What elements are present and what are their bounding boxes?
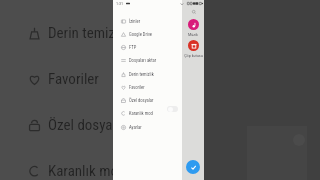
button[interactable]: Search xyxy=(190,8,197,15)
button[interactable]: Dosyaları aktar xyxy=(113,54,182,66)
staticText: Derin temizlik xyxy=(48,24,129,42)
button[interactable]: Ayarlar xyxy=(113,121,182,133)
button[interactable]: Karanlık mod xyxy=(113,107,182,119)
button[interactable]: Özel dosyalar xyxy=(113,94,182,106)
button[interactable]: İzinler xyxy=(113,15,182,27)
staticText: Google Drive xyxy=(129,32,153,37)
staticText: Ayarlar xyxy=(129,125,142,130)
staticText: Karanlık mod xyxy=(129,111,153,116)
button[interactable]: Özel dosyalar xyxy=(0,111,160,139)
button[interactable]: Dark mode toggle xyxy=(167,106,178,112)
staticText: Müzik xyxy=(188,32,198,37)
staticText: Derin temizlik xyxy=(129,72,154,77)
button[interactable]: Favoriler xyxy=(113,81,182,93)
button[interactable]: FTP xyxy=(113,41,182,53)
button[interactable]: Music xyxy=(188,19,199,30)
button[interactable]: Derin temizlik xyxy=(113,68,182,80)
button[interactable]: Karanlık mod xyxy=(0,157,160,180)
button[interactable]: Favoriler xyxy=(0,65,160,93)
staticText: Favoriler xyxy=(48,70,99,88)
staticText: Favoriler xyxy=(129,85,145,90)
staticText: Özel dosyalar xyxy=(129,98,154,103)
button[interactable]: Trash xyxy=(188,40,199,51)
button[interactable]: Derin temizlik xyxy=(0,19,160,47)
button[interactable]: Confirm xyxy=(186,160,200,174)
staticText: Karanlık mod xyxy=(48,162,126,180)
staticText: FTP xyxy=(129,45,137,50)
staticText: Dosyaları aktar xyxy=(129,58,157,63)
staticText: Çöp kutusu xyxy=(184,53,203,58)
button[interactable]: Google Drive xyxy=(113,28,182,40)
staticText: 1:31 xyxy=(116,1,124,6)
staticText: Özel dosyalar xyxy=(48,116,128,134)
staticText: İzinler xyxy=(129,19,141,24)
